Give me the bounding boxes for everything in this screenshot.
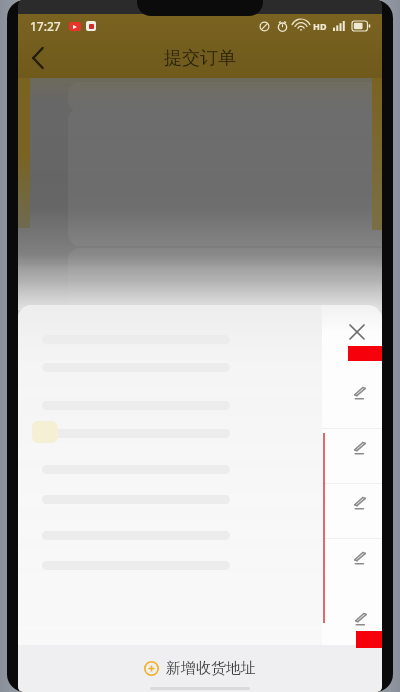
button[interactable]: Close <box>338 313 376 351</box>
button[interactable]: Edit address <box>345 379 375 409</box>
button[interactable]: Edit address <box>347 606 375 634</box>
button[interactable]: Edit address <box>18 373 382 428</box>
button[interactable]: 新增收货地址 <box>18 645 382 692</box>
button[interactable]: Back <box>18 38 58 78</box>
button[interactable]: Edit address <box>18 538 382 593</box>
staticText: 17:27 <box>30 18 61 34</box>
button[interactable]: Edit address <box>345 434 375 464</box>
button[interactable]: Edit address <box>345 544 375 574</box>
button[interactable]: Edit address <box>18 428 382 483</box>
button[interactable]: Edit address <box>18 483 382 538</box>
staticText: HD <box>313 20 327 32</box>
staticText: 提交订单 <box>164 47 236 70</box>
button[interactable]: Edit address <box>345 489 375 519</box>
staticText: 新增收货地址 <box>166 659 256 678</box>
